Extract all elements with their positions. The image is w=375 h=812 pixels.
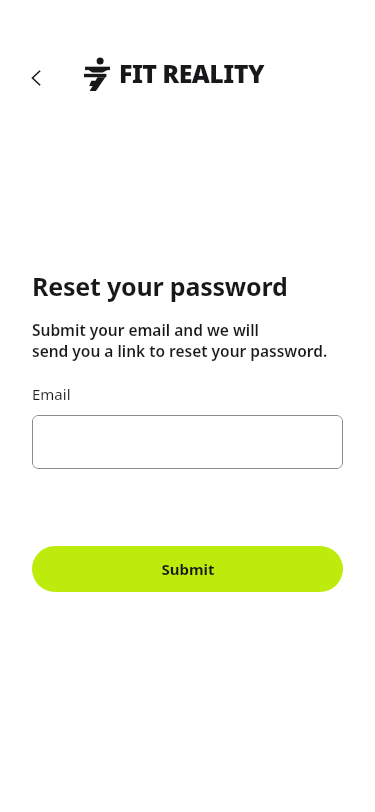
staticText: Reset your password	[32, 269, 288, 303]
button[interactable]: Fit Reality	[84, 57, 264, 91]
button[interactable]: Submit	[32, 546, 343, 592]
staticText: Submit	[161, 559, 215, 579]
staticText: FIT REALITY	[119, 56, 264, 90]
staticText: Email	[32, 384, 71, 404]
staticText: Submit your email and we will send you a…	[32, 319, 328, 362]
button[interactable]: Email input field	[32, 415, 343, 469]
button[interactable]: Back	[18, 60, 54, 96]
